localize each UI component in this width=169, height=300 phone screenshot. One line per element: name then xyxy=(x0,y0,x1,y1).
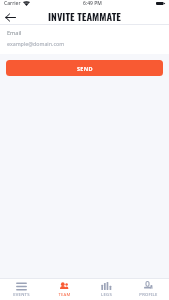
staticText: EVENTS xyxy=(13,292,30,298)
staticText: SEND xyxy=(77,65,93,72)
button[interactable]: Back xyxy=(3,10,17,24)
staticText: TEAM xyxy=(58,292,71,298)
button[interactable]: PROFILE xyxy=(127,279,169,300)
button[interactable]: TEAM xyxy=(43,279,85,300)
button[interactable]: EVENTS xyxy=(0,279,43,300)
button[interactable]: LEGS xyxy=(85,279,127,300)
staticText: LEGS xyxy=(101,292,112,298)
staticText: 6:49 PM xyxy=(83,0,102,7)
button[interactable]: SEND xyxy=(6,60,163,76)
staticText: example@domain.com xyxy=(7,40,65,47)
staticText: INVITE TEAMMATE xyxy=(48,9,121,23)
staticText: Carrier xyxy=(4,0,21,7)
staticText: Email xyxy=(7,29,22,37)
staticText: PROFILE xyxy=(139,292,158,298)
